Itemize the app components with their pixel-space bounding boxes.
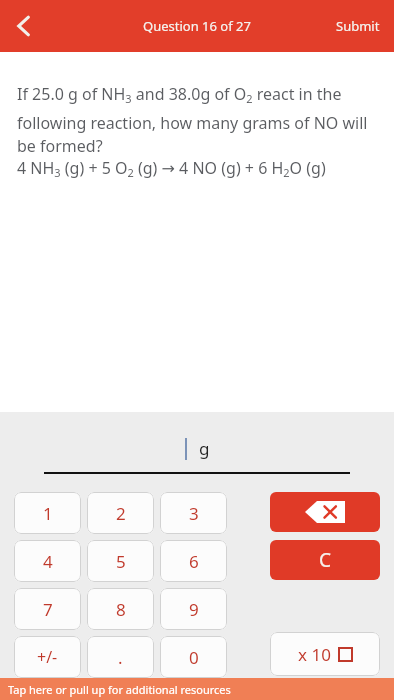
button[interactable]: 6 [160, 540, 227, 582]
button[interactable]: +/- [14, 636, 81, 678]
button[interactable]: 9 [160, 588, 227, 630]
staticText: Submit [336, 17, 380, 35]
button[interactable]: 7 [14, 588, 81, 630]
button[interactable]: 5 [87, 540, 154, 582]
staticText: 6 [189, 550, 199, 573]
button[interactable]: 0 [160, 636, 227, 678]
staticText: +/- [37, 646, 58, 668]
staticText: If 25.0 g of NH3 and 38.0g of O2 react i… [17, 83, 378, 157]
button[interactable]: 8 [87, 588, 154, 630]
button[interactable]: Back [0, 2, 48, 50]
staticText: Tap here or pull up for additional resou… [8, 682, 231, 697]
button[interactable]: 3 [160, 492, 227, 534]
staticText: 9 [189, 598, 199, 621]
staticText: 4 NH3 (g) + 5 O2 (g) → 4 NO (g) + 6 H2O … [17, 157, 326, 180]
staticText: Question 16 of 27 [143, 17, 251, 35]
staticText: 0 [189, 646, 199, 669]
staticText: 5 [116, 550, 126, 573]
staticText: 2 [116, 502, 126, 525]
staticText: 4 [43, 550, 53, 573]
staticText: 8 [116, 598, 126, 621]
staticText: C [319, 547, 332, 573]
staticText: 7 [43, 598, 53, 621]
button[interactable]: 2 [87, 492, 154, 534]
staticText: g [199, 437, 210, 460]
staticText: 3 [189, 502, 199, 525]
button[interactable]: x 10 [270, 632, 380, 676]
button[interactable]: . [87, 636, 154, 678]
button[interactable]: Backspace [270, 492, 380, 532]
button[interactable]: Tap here or pull up for additional resou… [0, 678, 394, 700]
staticText: 1 [43, 502, 53, 525]
button[interactable]: 4 [14, 540, 81, 582]
button[interactable]: C [270, 540, 380, 580]
staticText: x 10 [298, 643, 331, 666]
button[interactable]: Submit [322, 7, 394, 45]
staticText: . [118, 646, 123, 669]
button[interactable]: 1 [14, 492, 81, 534]
